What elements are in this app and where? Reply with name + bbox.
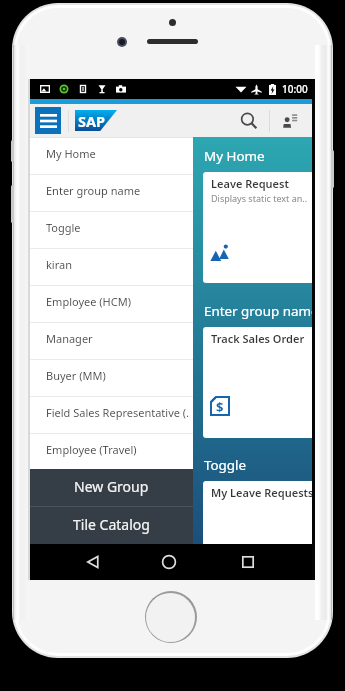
staticText: Enter group name [46, 183, 141, 198]
button[interactable]: Track Sales Order [203, 327, 312, 438]
button[interactable]: Employee (Travel) [30, 434, 193, 471]
button[interactable]: Enter group name [30, 175, 193, 212]
staticText: kiran [46, 257, 73, 272]
button[interactable]: Tile Catalog [30, 507, 193, 544]
staticText: Buyer (MM) [46, 368, 106, 383]
staticText: Employee (Travel) [46, 442, 137, 457]
staticText: New Group [74, 477, 149, 496]
button[interactable]: Employee (HCM) [30, 286, 193, 323]
staticText: Manager [46, 331, 93, 346]
button[interactable]: Search [229, 104, 269, 137]
staticText: Track Sales Order [211, 331, 305, 346]
staticText: SAP [78, 111, 106, 131]
button[interactable]: Leave Request [203, 172, 312, 283]
staticText: Employee (HCM) [46, 294, 131, 309]
staticText: My Home [204, 147, 265, 165]
button[interactable]: Manager [30, 323, 193, 360]
staticText: Toggle [204, 456, 247, 474]
button[interactable]: Recents [232, 544, 264, 580]
staticText: My Leave Requests [211, 485, 312, 500]
button[interactable]: Home [153, 544, 185, 580]
staticText: Field Sales Representative (... [46, 405, 190, 420]
button[interactable]: Menu [35, 107, 61, 134]
staticText: Leave Request [211, 176, 289, 191]
staticText: 10:00 [282, 82, 308, 96]
button[interactable]: kiran [30, 249, 193, 286]
button[interactable]: Back [77, 544, 109, 580]
staticText: Displays static text an.. [211, 192, 308, 204]
button[interactable]: Buyer (MM) [30, 360, 193, 397]
button[interactable]: My Home [30, 138, 193, 175]
button[interactable]: Toggle [30, 212, 193, 249]
staticText: My Home [46, 146, 96, 161]
button[interactable]: My Leave Requests [203, 481, 312, 580]
button[interactable]: Field Sales Representative (... [30, 397, 193, 434]
staticText: Tile Catalog [73, 515, 150, 534]
staticText: $ [216, 398, 224, 416]
button[interactable]: New Group [30, 469, 193, 506]
staticText: Enter group name [204, 302, 312, 320]
button[interactable]: Profile [270, 104, 310, 137]
staticText: Toggle [46, 220, 81, 235]
